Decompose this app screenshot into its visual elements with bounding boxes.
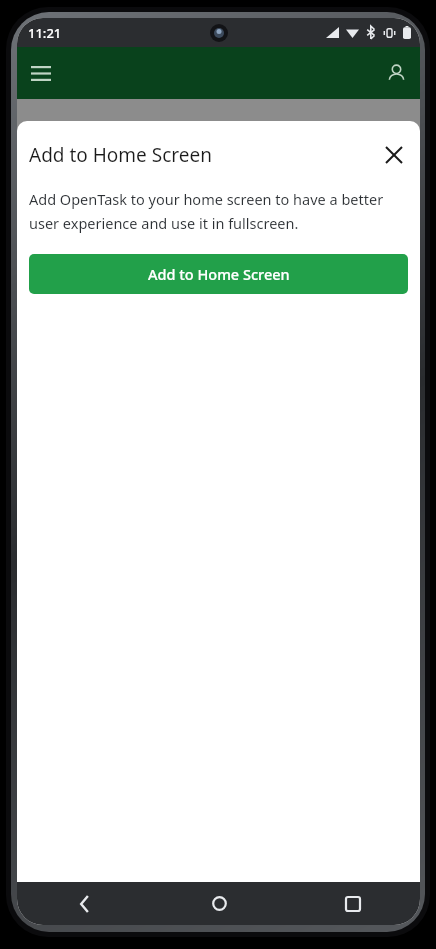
staticText: Add to Home Screen [29,142,376,168]
button[interactable]: Add to Home Screen [29,254,408,294]
button[interactable]: Back [17,882,152,925]
button[interactable]: Home [152,882,286,925]
staticText: Add to Home Screen [148,264,290,284]
staticText: Add OpenTask to your home screen to have… [29,189,408,233]
staticText: 11:21 [28,24,62,42]
button[interactable]: Recent apps [286,882,420,925]
button[interactable]: Open navigation menu [22,54,60,92]
button[interactable]: Close dialog [376,137,412,173]
staticText: Welcome to OpenTask! [28,118,307,153]
button[interactable]: Account [377,54,415,92]
